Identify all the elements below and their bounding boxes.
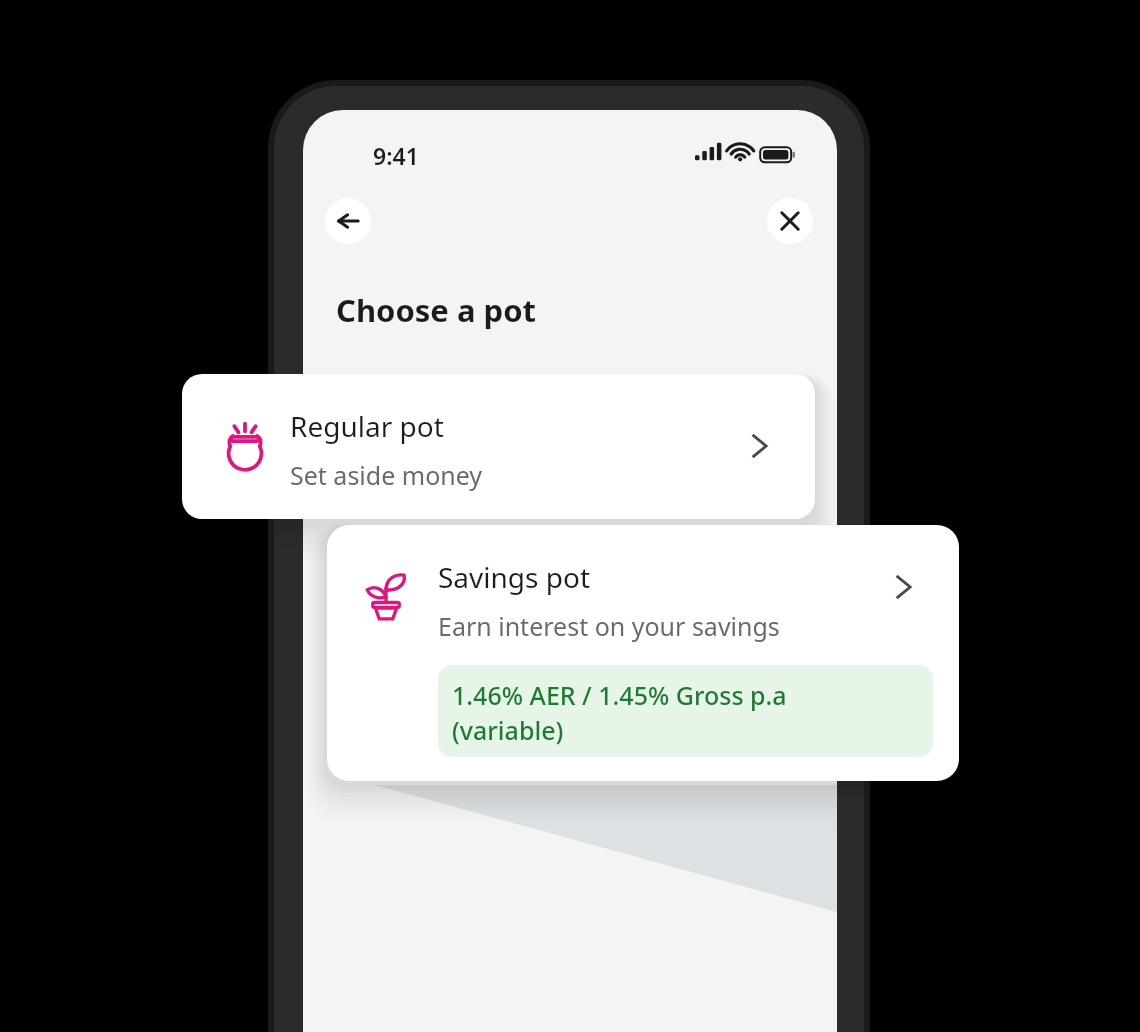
button[interactable]: Regular pot xyxy=(182,374,815,519)
staticText: Savings pot xyxy=(438,558,591,596)
staticText: 9:41 xyxy=(373,140,419,171)
staticText: Set aside money xyxy=(290,458,483,492)
button[interactable]: Savings pot xyxy=(327,525,959,781)
staticText: Regular pot xyxy=(290,407,444,445)
button[interactable]: Back xyxy=(325,198,371,244)
staticText: Choose a pot xyxy=(336,289,536,331)
button[interactable]: Close xyxy=(767,198,813,244)
staticText: Earn interest on your savings xyxy=(438,609,780,643)
staticText: 1.46% AER / 1.45% Gross p.a (variable) xyxy=(452,678,832,748)
